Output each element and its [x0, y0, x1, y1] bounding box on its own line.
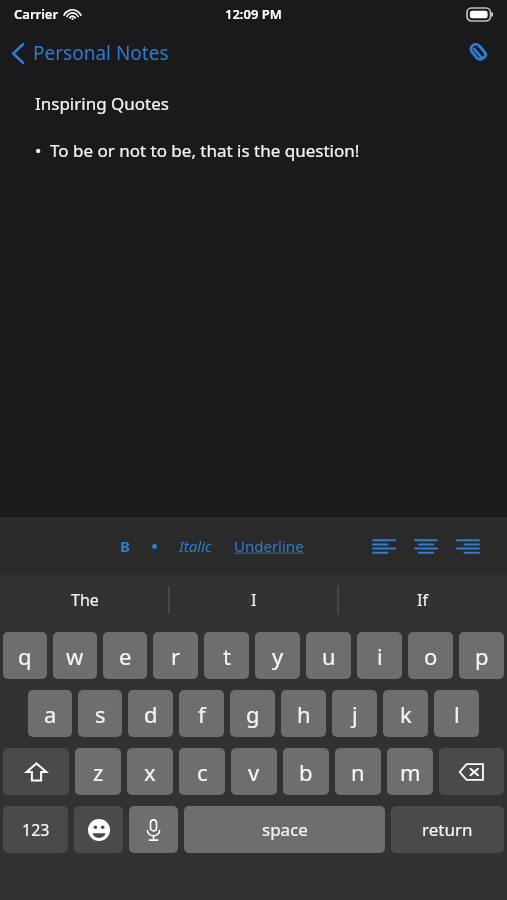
staticText: p	[475, 641, 489, 671]
button[interactable]: b	[283, 748, 329, 795]
button[interactable]: Emoji	[74, 806, 123, 853]
staticText: t	[223, 641, 231, 671]
staticText: l	[454, 699, 460, 729]
staticText: u	[322, 641, 336, 671]
button[interactable]: z	[75, 748, 121, 795]
button[interactable]: r	[153, 632, 198, 679]
button[interactable]: t	[204, 632, 249, 679]
staticText: w	[66, 641, 84, 671]
staticText: s	[95, 699, 106, 729]
button[interactable]: Bulleted list	[140, 534, 169, 559]
staticText: I	[251, 589, 257, 611]
staticText: 12:09 PM	[225, 5, 282, 23]
button[interactable]: o	[408, 632, 453, 679]
button[interactable]: y	[255, 632, 300, 679]
staticText: o	[424, 641, 438, 671]
button[interactable]: s	[78, 690, 122, 737]
button[interactable]: c	[179, 748, 225, 795]
staticText: f	[198, 699, 206, 729]
staticText: The	[71, 589, 99, 611]
button[interactable]: n	[335, 748, 381, 795]
button[interactable]: v	[231, 748, 277, 795]
staticText: Carrier	[14, 5, 59, 23]
button[interactable]: Attach file	[451, 33, 507, 73]
button[interactable]: p	[459, 632, 504, 679]
staticText: d	[144, 699, 158, 729]
staticText: To be or not to be, that is the question…	[50, 139, 360, 162]
staticText: a	[44, 699, 57, 729]
staticText: r	[171, 641, 181, 671]
staticText: space	[262, 818, 308, 841]
staticText: •	[35, 139, 42, 162]
button[interactable]: w	[53, 632, 97, 679]
button[interactable]: f	[179, 690, 224, 737]
staticText: b	[299, 757, 313, 787]
staticText: i	[377, 641, 383, 671]
staticText: Italic	[179, 536, 212, 556]
button[interactable]: d	[128, 690, 173, 737]
staticText: v	[248, 757, 260, 787]
button[interactable]: Align right	[447, 529, 489, 564]
staticText: h	[297, 699, 311, 729]
button[interactable]: l	[434, 690, 479, 737]
staticText: z	[93, 757, 104, 787]
button[interactable]: h	[281, 690, 326, 737]
button[interactable]: Align center	[405, 529, 447, 564]
staticText: x	[144, 757, 156, 787]
button[interactable]: I	[169, 575, 338, 625]
button[interactable]: j	[332, 690, 377, 737]
button[interactable]: e	[103, 632, 147, 679]
button[interactable]: m	[387, 748, 433, 795]
button[interactable]: q	[3, 632, 47, 679]
button[interactable]: Align left	[363, 529, 405, 564]
staticText: g	[246, 699, 260, 729]
button[interactable]: Dictate	[129, 806, 178, 853]
button[interactable]: Personal Notes	[0, 34, 183, 72]
staticText: Personal Notes	[33, 40, 169, 66]
staticText: c	[197, 757, 208, 787]
staticText: m	[400, 757, 421, 787]
button[interactable]: g	[230, 690, 275, 737]
staticText: k	[400, 699, 412, 729]
button[interactable]: Underline	[228, 528, 310, 564]
staticText: n	[351, 757, 365, 787]
button[interactable]: return	[391, 806, 504, 853]
staticText: q	[18, 641, 32, 671]
button[interactable]: a	[28, 690, 72, 737]
staticText: e	[119, 641, 132, 671]
button[interactable]: 123	[3, 806, 68, 853]
button[interactable]: Backspace	[439, 748, 504, 795]
button[interactable]: The	[0, 575, 169, 625]
button[interactable]: k	[383, 690, 428, 737]
staticText: 123	[22, 819, 50, 841]
button[interactable]: space	[184, 806, 385, 853]
button[interactable]: x	[127, 748, 173, 795]
button[interactable]: u	[306, 632, 351, 679]
staticText: y	[272, 641, 284, 671]
staticText: Inspiring Quotes	[35, 92, 169, 115]
staticText: B	[120, 536, 130, 556]
staticText: If	[417, 589, 428, 611]
button[interactable]: Italic	[169, 528, 222, 564]
button[interactable]: Shift	[3, 748, 69, 795]
staticText: return	[422, 818, 473, 841]
staticText: Underline	[234, 536, 304, 556]
button[interactable]: i	[357, 632, 402, 679]
button[interactable]: B	[110, 528, 140, 564]
button[interactable]: If	[338, 575, 507, 625]
staticText: j	[352, 699, 358, 729]
